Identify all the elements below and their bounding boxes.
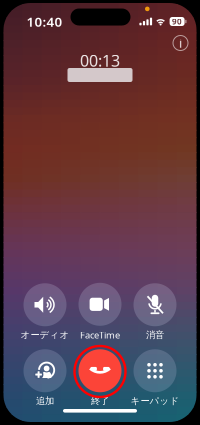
staticText: 00:13 <box>80 50 120 71</box>
staticText: 追加 <box>36 395 54 407</box>
staticText: 10:40 <box>26 13 62 30</box>
button[interactable]: FaceTime <box>72 284 127 340</box>
button[interactable]: 詳細情報 <box>170 33 190 53</box>
staticText: FaceTime <box>80 329 120 341</box>
staticText: キーパッド <box>130 395 179 407</box>
button[interactable]: 消音 <box>127 284 182 340</box>
staticText: 90 <box>172 16 182 27</box>
staticText: 終了 <box>91 395 109 407</box>
staticText: 消音 <box>146 329 164 341</box>
staticText: i <box>179 35 182 51</box>
button[interactable]: 追加 <box>17 350 72 406</box>
button[interactable]: 終了 <box>72 350 127 406</box>
staticText: オーディオ <box>20 329 69 341</box>
button[interactable]: オーディオ <box>17 284 72 340</box>
button[interactable]: キーパッド <box>127 350 182 406</box>
